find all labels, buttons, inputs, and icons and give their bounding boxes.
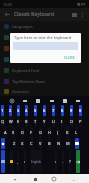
button[interactable]: Predictions & Corrections [0, 32, 89, 43]
staticText: E [17, 119, 20, 124]
staticText: Q [1, 119, 5, 124]
staticText: ⬤ ▮ ▮ [77, 2, 86, 6]
staticText: L [75, 130, 78, 135]
button[interactable]: Key Size [0, 54, 89, 65]
button[interactable] [1, 150, 5, 173]
button[interactable]: O [70, 116, 74, 127]
button[interactable]: Y [43, 116, 46, 127]
staticText: I [61, 119, 63, 124]
button[interactable]: Q [1, 116, 5, 127]
button[interactable]: ‹ [24, 150, 26, 173]
staticText: › [55, 159, 57, 164]
staticText: 2 [9, 108, 12, 113]
button[interactable] [75, 138, 79, 149]
staticText: X [21, 141, 24, 146]
staticText: B [48, 141, 51, 146]
button[interactable]: C [30, 138, 33, 149]
staticText: O [70, 119, 74, 124]
button[interactable]: 4 [25, 105, 28, 116]
button[interactable]: L [75, 127, 78, 138]
staticText: G [39, 130, 42, 135]
button[interactable] [1, 138, 5, 149]
button[interactable]: Z [13, 138, 16, 149]
button[interactable]: A [4, 127, 7, 138]
button[interactable]: T [34, 116, 37, 127]
staticText: 1 [1, 108, 4, 113]
button[interactable]: CLOSE [62, 54, 77, 61]
button[interactable]: I [61, 116, 63, 127]
button[interactable]: Keyboard tool 4 [61, 97, 68, 104]
button[interactable]: F [30, 127, 33, 138]
button[interactable]: Back [70, 175, 78, 183]
staticText: Gestures [12, 89, 29, 94]
button[interactable]: Keyboard tool 2 [34, 97, 41, 104]
button[interactable]: H [48, 127, 51, 138]
button[interactable]: M [66, 138, 70, 149]
staticText: Sound & Vibration [12, 46, 47, 51]
button[interactable]: W [9, 116, 13, 127]
button[interactable]: › [55, 150, 57, 173]
button[interactable]: D [21, 127, 24, 138]
button[interactable]: S [12, 127, 15, 138]
button[interactable]: 7 [52, 105, 55, 116]
button[interactable]: 2 [9, 105, 12, 116]
button[interactable]: Home [50, 175, 58, 183]
button[interactable]: Keyboard tool 3 [48, 97, 55, 104]
button[interactable]: V [39, 138, 42, 149]
staticText: 9 [70, 108, 73, 113]
button[interactable]: Keyboard Font [0, 65, 89, 76]
button[interactable]: 6 [43, 105, 46, 116]
button[interactable]: Sound & Vibration [0, 43, 89, 54]
button[interactable]: Languages [0, 21, 89, 32]
button[interactable]: B [48, 138, 51, 149]
staticText: M [66, 141, 70, 146]
staticText: Keyboard Font [12, 68, 40, 73]
button[interactable]: 3 [17, 105, 20, 116]
button[interactable]: J [57, 127, 59, 138]
button[interactable]: Theme [70, 10, 79, 19]
staticText: Type here to test the keyboard [14, 35, 72, 40]
button[interactable]: N [57, 138, 61, 149]
button[interactable]: More options [79, 11, 86, 18]
button[interactable]: ? [69, 150, 71, 173]
staticText: P [79, 119, 82, 124]
button[interactable]: Back [3, 10, 12, 19]
staticText: T [34, 119, 37, 124]
button[interactable] [10, 150, 13, 173]
staticText: K [66, 130, 69, 135]
button[interactable]: P [79, 116, 82, 127]
button[interactable]: Gestures [0, 87, 89, 96]
staticText: 10:45 [3, 2, 12, 7]
button[interactable]: Hide keyboard [11, 175, 19, 183]
staticText: J [57, 130, 59, 135]
button[interactable]: R [25, 116, 28, 127]
button[interactable]: 1 [1, 105, 4, 116]
staticText: V [39, 141, 42, 146]
button[interactable]: Top/Bottom Rows [0, 76, 89, 87]
button[interactable]: E [17, 116, 20, 127]
button[interactable]: . [62, 150, 64, 173]
button[interactable]: K [66, 127, 69, 138]
button[interactable]: 0 [79, 105, 82, 116]
button[interactable]: Keyboard tool 0 [8, 97, 15, 104]
button[interactable]: Keyboard tool 5 [74, 97, 81, 104]
staticText: N [57, 141, 61, 146]
button[interactable]: , [17, 150, 19, 173]
button[interactable]: G [39, 127, 42, 138]
button[interactable]: Recents [31, 175, 39, 183]
button[interactable]: English [31, 150, 42, 173]
button[interactable]: U [52, 116, 55, 127]
button[interactable]: 9 [70, 105, 73, 116]
staticText: 4 [25, 108, 28, 113]
staticText: ▾ [14, 177, 17, 182]
button[interactable]: 8 [61, 105, 64, 116]
button[interactable]: Keyboard tool 1 [21, 97, 28, 104]
button[interactable]: 5 [34, 105, 37, 116]
button[interactable]: X [21, 138, 24, 149]
staticText: 6 [43, 108, 46, 113]
staticText: Z [13, 141, 16, 146]
staticText: F [30, 130, 33, 135]
button[interactable] [76, 150, 80, 173]
